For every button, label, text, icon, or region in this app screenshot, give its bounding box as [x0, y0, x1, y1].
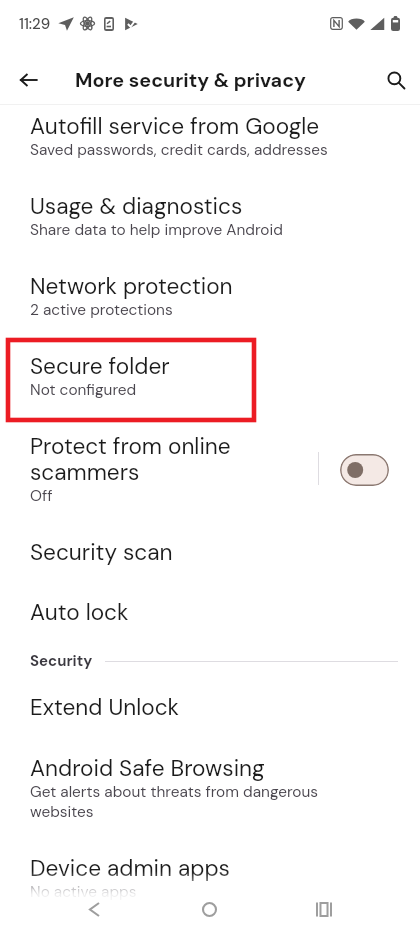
staticText: Auto lock	[30, 600, 129, 626]
staticText: 11:29	[19, 14, 51, 34]
staticText: Off	[30, 486, 53, 506]
button[interactable]: Android Safe Browsing	[0, 747, 420, 847]
button[interactable]: Back	[0, 56, 56, 104]
button[interactable]: Security scan	[0, 531, 420, 591]
staticText: Not configured	[30, 380, 137, 400]
staticText: No active apps	[30, 882, 137, 902]
staticText: Device admin apps	[30, 856, 230, 882]
staticText: Share data to help improve Android	[30, 220, 283, 240]
button[interactable]: Secure folder	[0, 345, 420, 425]
staticText: Network protection	[30, 274, 233, 300]
staticText: Secure folder	[30, 354, 170, 380]
button[interactable]: Auto lock	[0, 591, 420, 651]
button[interactable]: Autofill service from Google	[0, 105, 420, 185]
staticText: Saved passwords, credit cards, addresses	[30, 140, 328, 160]
button[interactable]: Extend Unlock	[0, 688, 420, 747]
staticText: More security & privacy	[75, 67, 306, 93]
button[interactable]: Usage & diagnostics	[0, 185, 420, 265]
button[interactable]: Protect from online scammers toggle	[340, 454, 389, 486]
staticText: Autofill service from Google	[30, 114, 320, 140]
staticText: Get alerts about threats from dangerous …	[30, 782, 365, 822]
staticText: Security scan	[30, 540, 173, 566]
staticText: Android Safe Browsing	[30, 756, 265, 782]
button[interactable]: Search	[372, 56, 420, 104]
staticText: Security	[30, 652, 93, 670]
button[interactable]: Back	[66, 885, 123, 933]
staticText: Extend Unlock	[30, 695, 180, 721]
button[interactable]: Network protection	[0, 265, 420, 345]
staticText: 2 active protections	[30, 300, 173, 320]
button[interactable]: Home	[181, 885, 238, 933]
staticText: Usage & diagnostics	[30, 194, 243, 220]
button[interactable]: Recent apps	[295, 885, 352, 933]
staticText: Protect from online scammers	[30, 434, 260, 486]
button[interactable]: Protect from online scammers	[0, 425, 420, 531]
button[interactable]: Device admin apps	[0, 847, 420, 927]
